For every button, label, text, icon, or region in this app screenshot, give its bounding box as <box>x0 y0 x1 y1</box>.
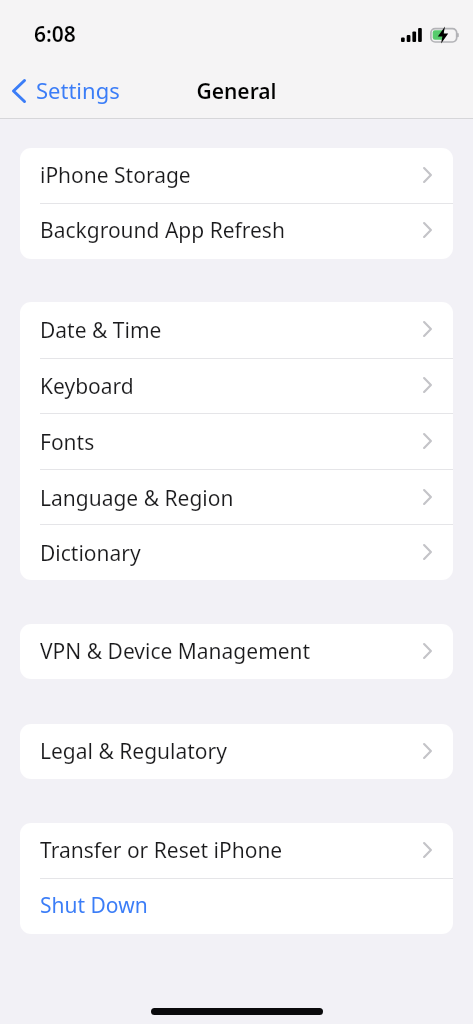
other: Back <box>12 79 26 103</box>
staticText: Fonts <box>40 428 95 457</box>
staticText: Legal & Regulatory <box>40 737 227 766</box>
button[interactable]: Language & Region <box>20 470 453 526</box>
staticText: Dictionary <box>40 539 141 568</box>
staticText: Background App Refresh <box>40 216 285 245</box>
button[interactable]: Keyboard <box>20 358 453 414</box>
staticText: VPN & Device Management <box>40 637 311 666</box>
button[interactable]: Legal & Regulatory <box>20 724 453 779</box>
button[interactable]: Dictionary <box>20 526 453 580</box>
button[interactable]: Back <box>0 70 130 112</box>
staticText: 6:08 <box>34 20 76 49</box>
button[interactable]: Transfer or Reset iPhone <box>20 823 453 878</box>
staticText: Language & Region <box>40 484 234 513</box>
button[interactable]: Shut Down <box>20 878 453 933</box>
staticText: Settings <box>36 75 120 105</box>
button[interactable]: Date & Time <box>20 302 453 358</box>
staticText: General <box>196 77 277 106</box>
staticText: Keyboard <box>40 372 134 401</box>
staticText: Shut Down <box>40 891 148 920</box>
staticText: Transfer or Reset iPhone <box>40 836 283 865</box>
button[interactable]: iPhone Storage <box>20 148 453 203</box>
button[interactable]: Background App Refresh <box>20 203 453 258</box>
button[interactable]: VPN & Device Management <box>20 624 453 679</box>
button[interactable]: Fonts <box>20 414 453 470</box>
staticText: Date & Time <box>40 316 162 345</box>
staticText: iPhone Storage <box>40 161 191 190</box>
